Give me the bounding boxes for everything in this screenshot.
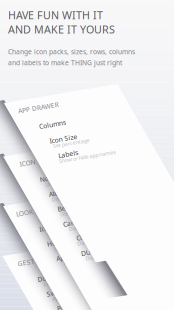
staticText: Set percentage	[53, 139, 90, 147]
staticText: Lock screen	[43, 278, 73, 285]
staticText: Home	[47, 238, 66, 247]
staticText: Use default	[45, 179, 73, 186]
staticText: APP DRAWER	[18, 103, 59, 112]
staticText: Atomic	[49, 188, 70, 197]
staticText: Bold	[47, 229, 57, 236]
staticText: Icon Pack	[39, 222, 69, 231]
staticText: Swipe up	[46, 287, 75, 296]
staticText: Fast scroll	[63, 258, 88, 265]
staticText: Downloaded	[85, 252, 115, 260]
staticText: Labels	[58, 149, 78, 158]
staticText: Downloaded	[77, 238, 107, 245]
staticText: and labels to make THING just right	[8, 58, 122, 67]
staticText: CandyCons	[63, 217, 97, 226]
staticText: Change icon packs, sizes, rows, columns	[8, 47, 135, 56]
staticText: Double tap	[37, 272, 72, 281]
staticText: Clix	[76, 233, 88, 242]
staticText: Overview	[61, 308, 84, 310]
staticText: Downloaded	[51, 194, 81, 201]
staticText: HAVE FUN WITH IT	[8, 8, 103, 22]
staticText: GESTURES	[17, 257, 51, 266]
staticText: Downloaded	[60, 208, 90, 215]
staticText: Pinch in	[57, 302, 82, 310]
staticText: App Slide	[56, 252, 86, 261]
staticText: LOOK AND FEEL	[16, 206, 67, 214]
staticText: Icon and label	[54, 242, 87, 250]
staticText: Belle UI	[57, 203, 82, 211]
staticText: AND MAKE IT YOURS	[8, 22, 115, 36]
staticText: Show or hide app names	[58, 153, 116, 160]
staticText: ICON PACK	[19, 157, 53, 166]
staticText: App drawer	[52, 293, 79, 300]
staticText: Icon Size	[49, 134, 77, 143]
staticText: DUX Icons	[81, 247, 113, 255]
staticText: Downloaded	[68, 223, 98, 230]
staticText: None	[40, 174, 57, 183]
staticText: Columns	[39, 120, 66, 129]
